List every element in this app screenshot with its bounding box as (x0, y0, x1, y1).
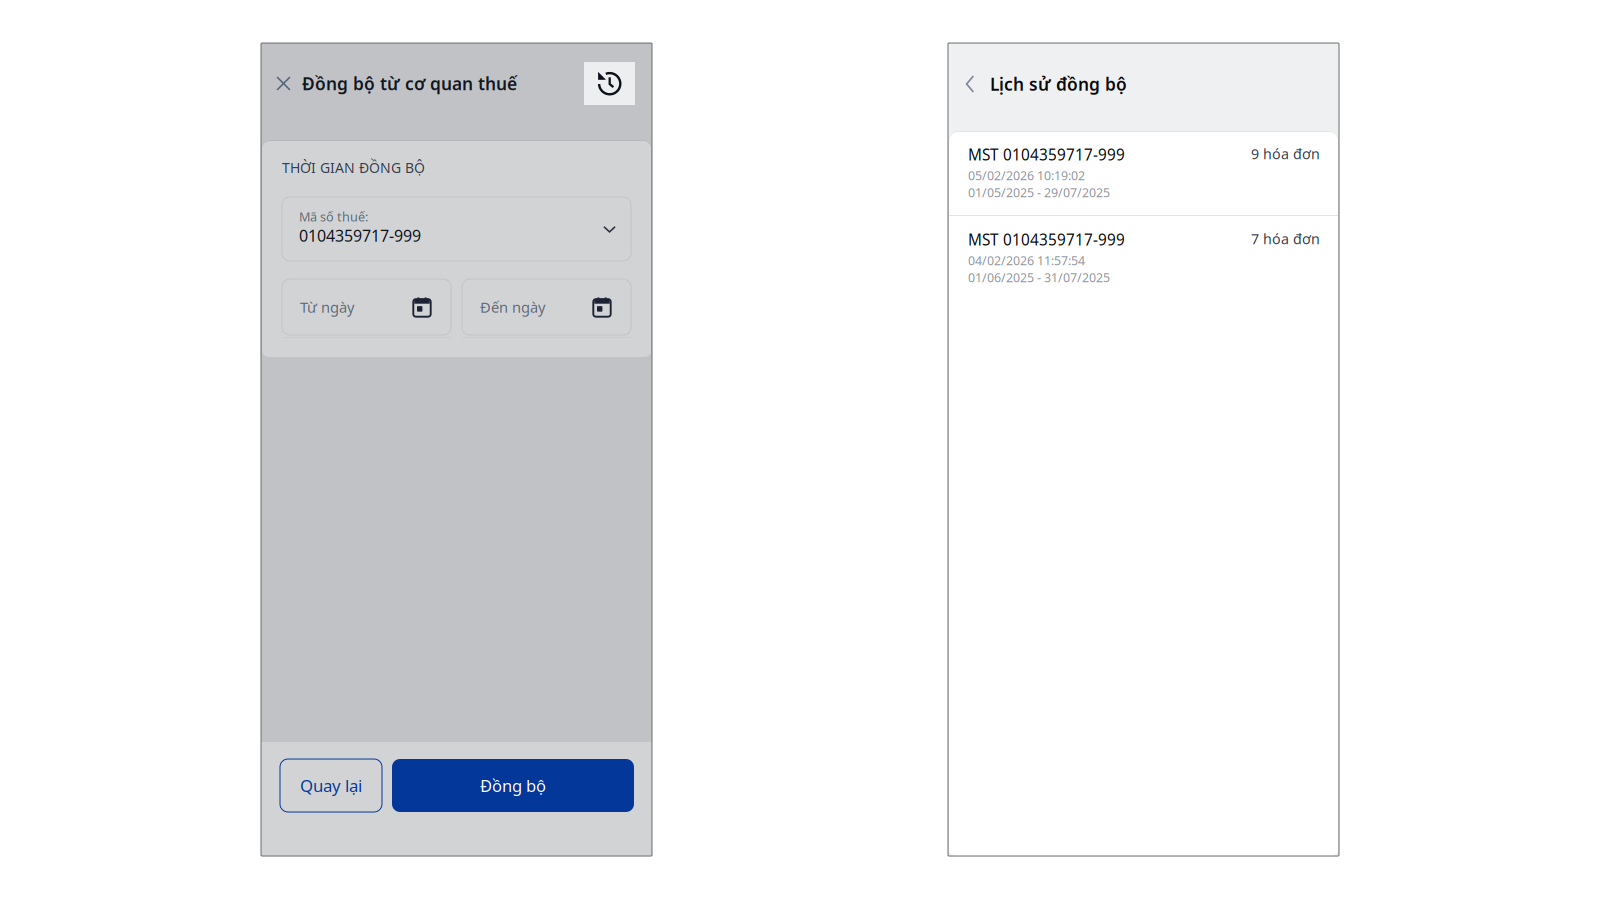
button[interactable]: Từ ngày (282, 279, 451, 338)
button[interactable]: Lịch sử đồng bộ (584, 62, 635, 105)
staticText: 01/05/2025 - 29/07/2025 (968, 184, 1110, 201)
staticText: 0104359717-999 (299, 225, 421, 246)
staticText: THỜI GIAN ĐỒNG BỘ (282, 158, 425, 177)
staticText: Đồng bộ (480, 774, 546, 797)
button[interactable]: Quay lại (280, 759, 382, 812)
staticText: 04/02/2026 11:57:54 (968, 252, 1085, 269)
button[interactable]: MST 0104359717-999 (948, 216, 1339, 300)
staticText: MST 0104359717-999 (968, 229, 1125, 250)
button[interactable]: Đóng (261, 62, 525, 105)
staticText: Từ ngày (300, 297, 354, 317)
staticText: Mã số thuế: (299, 208, 368, 225)
staticText: 9 hóa đơn (1251, 144, 1320, 163)
staticText: 01/06/2025 - 31/07/2025 (968, 269, 1110, 286)
staticText: 7 hóa đơn (1251, 229, 1320, 248)
staticText: Lịch sử đồng bộ (990, 72, 1127, 96)
button[interactable]: Quay lại (948, 66, 1137, 102)
button[interactable]: Mã số thuế: (282, 197, 631, 261)
staticText: Quay lại (300, 774, 362, 797)
button[interactable]: MST 0104359717-999 (948, 131, 1339, 215)
button[interactable]: Đồng bộ (392, 759, 634, 812)
staticText: Đồng bộ từ cơ quan thuế (302, 72, 517, 95)
staticText: Đến ngày (480, 297, 545, 317)
button[interactable]: Đến ngày (462, 279, 631, 338)
staticText: 05/02/2026 10:19:02 (968, 167, 1085, 184)
staticText: MST 0104359717-999 (968, 144, 1125, 165)
